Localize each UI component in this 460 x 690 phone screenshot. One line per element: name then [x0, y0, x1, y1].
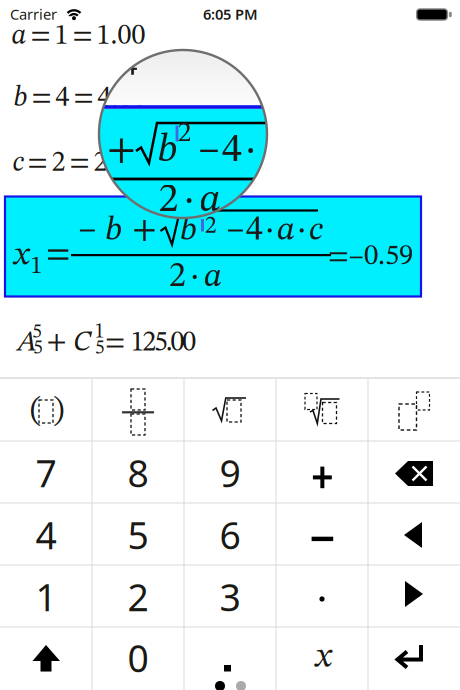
- staticText: b: [180, 214, 197, 248]
- staticText: (: [30, 395, 41, 428]
- staticText: C: [73, 329, 91, 357]
- staticText: =: [46, 238, 70, 272]
- button[interactable]: Fraction: [92, 378, 184, 441]
- staticText: +: [47, 328, 67, 356]
- staticText: b: [157, 130, 177, 170]
- staticText: 4: [122, 52, 137, 82]
- staticText: 3: [219, 572, 240, 621]
- button[interactable]: Return: [368, 627, 460, 690]
- staticText: c = 2 = 2.00: [12, 150, 142, 177]
- button[interactable]: 5: [92, 503, 184, 565]
- staticText: 2: [177, 120, 191, 148]
- button[interactable]: Minus: [276, 503, 368, 565]
- staticText: –: [79, 214, 96, 248]
- staticText: 5: [33, 338, 43, 358]
- staticText: A: [17, 329, 36, 357]
- staticText: a = 1 = 1.00: [11, 23, 145, 50]
- button[interactable]: Decimal point: [184, 627, 276, 690]
- button[interactable]: 8: [92, 441, 184, 503]
- button[interactable]: 9: [184, 441, 276, 503]
- staticText: =–0.59: [328, 242, 413, 271]
- staticText: 2: [205, 214, 217, 238]
- button[interactable]: Square root: [184, 378, 276, 441]
- staticText: 5: [127, 510, 148, 559]
- staticText: 125.00: [130, 329, 196, 357]
- button[interactable]: Delete: [368, 441, 460, 503]
- staticText: x: [14, 239, 29, 273]
- staticText: x: [315, 640, 331, 675]
- staticText: 6: [219, 510, 240, 559]
- staticText: 8: [127, 448, 148, 497]
- staticText: 2 · a: [158, 181, 220, 220]
- staticText: 6:05 PM: [203, 4, 258, 24]
- staticText: – 4 ·: [199, 130, 256, 170]
- staticText: 4: [35, 510, 56, 559]
- button[interactable]: Power: [368, 378, 460, 441]
- button[interactable]: 1: [0, 565, 92, 627]
- button[interactable]: 4: [0, 503, 92, 565]
- staticText: +: [107, 130, 136, 170]
- button[interactable]: 3: [184, 565, 276, 627]
- button[interactable]: 6: [184, 503, 276, 565]
- staticText: 9: [219, 448, 240, 497]
- button[interactable]: Variable x: [276, 627, 368, 690]
- button[interactable]: Shift: [0, 627, 92, 690]
- staticText: 2 · a: [169, 260, 222, 294]
- staticText: 0: [127, 633, 148, 682]
- button[interactable]: Parentheses: [0, 378, 92, 441]
- button[interactable]: Cursor left: [368, 503, 460, 565]
- staticText: +: [132, 214, 156, 248]
- staticText: Carrier: [10, 4, 57, 24]
- staticText: 1: [94, 322, 104, 342]
- button[interactable]: Multiply: [276, 565, 368, 627]
- staticText: 5: [95, 338, 105, 358]
- button[interactable]: Cursor right: [368, 565, 460, 627]
- staticText: 2: [127, 572, 148, 621]
- staticText: b = 4 = 4.00: [13, 85, 146, 112]
- staticText: b: [105, 214, 122, 248]
- button[interactable]: Plus: [276, 441, 368, 503]
- button[interactable]: 7: [0, 441, 92, 503]
- staticText: 5: [32, 322, 42, 342]
- staticText: =: [105, 329, 125, 357]
- staticText: – 4 · a · c: [227, 214, 323, 247]
- staticText: 1: [35, 572, 56, 621]
- button[interactable]: 0: [92, 627, 184, 690]
- staticText: ): [53, 395, 64, 428]
- button[interactable]: Nth root: [276, 378, 368, 441]
- staticText: 7: [35, 448, 56, 497]
- staticText: 1: [30, 255, 42, 279]
- button[interactable]: 2: [92, 565, 184, 627]
